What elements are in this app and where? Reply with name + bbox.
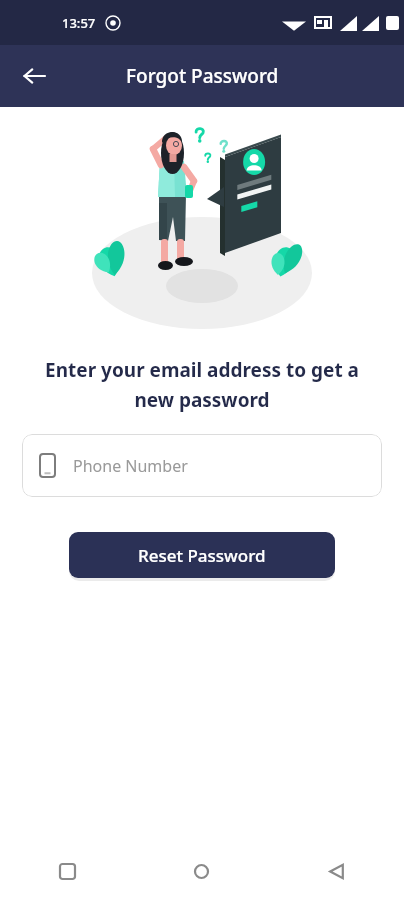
- staticText: Enter your email address to get a new pa…: [22, 357, 382, 412]
- button[interactable]: Home: [134, 842, 269, 900]
- staticText: Reset Password: [138, 544, 266, 567]
- button[interactable]: Back: [269, 842, 404, 900]
- staticText: Forgot Password: [126, 63, 279, 89]
- staticText: 13:57: [62, 14, 96, 32]
- staticText: Phone Number: [73, 455, 188, 477]
- button[interactable]: Phone Number: [22, 434, 382, 497]
- button[interactable]: Reset Password: [69, 532, 335, 578]
- button[interactable]: Recent apps: [0, 842, 134, 900]
- button[interactable]: Back: [12, 54, 56, 98]
